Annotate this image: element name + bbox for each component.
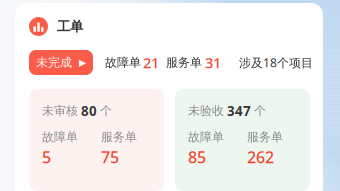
staticText: 347 xyxy=(227,102,251,120)
staticText: 服务单 xyxy=(101,130,137,144)
button[interactable]: 未验收 xyxy=(175,89,310,191)
staticText: 工单 xyxy=(57,18,83,35)
staticText: 个 xyxy=(100,103,112,118)
staticText: ▶ xyxy=(79,57,86,68)
staticText: 262 xyxy=(247,146,274,168)
staticText: 涉及18个项目 xyxy=(239,54,313,70)
staticText: 个 xyxy=(254,103,266,118)
staticText: 服务单 xyxy=(166,55,202,70)
staticText: 80 xyxy=(81,102,97,120)
staticText: 未验收 xyxy=(188,103,224,118)
button[interactable]: 未完成 xyxy=(29,50,93,75)
staticText: 故障单 xyxy=(188,130,224,144)
staticText: 5 xyxy=(42,146,51,168)
staticText: 服务单 xyxy=(247,130,283,144)
staticText: 85 xyxy=(188,146,206,168)
staticText: 故障单 xyxy=(42,130,78,144)
staticText: 75 xyxy=(101,146,119,168)
button[interactable]: 未审核 xyxy=(29,89,164,191)
staticText: 未完成 xyxy=(36,55,72,70)
staticText: 故障单 xyxy=(105,55,141,70)
staticText: 31 xyxy=(205,53,221,72)
staticText: 未审核 xyxy=(42,103,78,118)
staticText: 21 xyxy=(143,53,159,72)
